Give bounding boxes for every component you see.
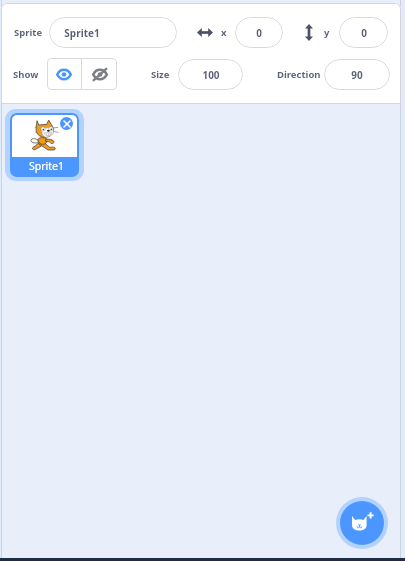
button[interactable]: 0 <box>339 17 388 48</box>
button[interactable]: Delete sprite <box>60 117 73 130</box>
button[interactable]: Hide sprite <box>82 58 117 90</box>
staticText: y <box>324 26 330 39</box>
staticText: Direction <box>277 68 321 81</box>
staticText: Show <box>13 68 39 81</box>
button[interactable]: 100 <box>178 59 243 90</box>
button[interactable]: Sprite1 <box>49 17 177 48</box>
button[interactable]: Show sprite <box>47 58 81 90</box>
button[interactable]: 90 <box>324 59 390 90</box>
button[interactable]: 0 <box>235 17 283 48</box>
button[interactable]: Delete sprite <box>5 109 84 181</box>
staticText: Sprite <box>14 26 43 39</box>
staticText: 0 <box>361 26 367 40</box>
button[interactable]: Add sprite <box>336 497 388 549</box>
staticText: Sprite1 <box>64 26 100 40</box>
staticText: 90 <box>351 68 363 82</box>
staticText: Sprite1 <box>29 159 64 173</box>
staticText: 100 <box>202 68 220 82</box>
staticText: 0 <box>256 26 262 40</box>
staticText: Size <box>151 68 170 81</box>
staticText: x <box>221 26 227 39</box>
